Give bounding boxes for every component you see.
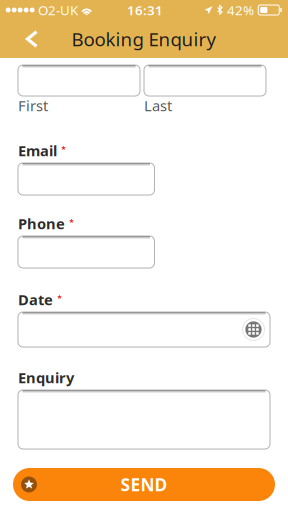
staticText: SEND: [120, 473, 167, 496]
staticText: Date: [18, 290, 53, 309]
staticText: 42%: [227, 1, 254, 19]
button[interactable]: SEND: [13, 468, 275, 501]
staticText: Email: [18, 141, 57, 160]
staticText: Booking Enquiry: [71, 27, 216, 51]
staticText: First: [18, 96, 48, 115]
staticText: O2-UK: [38, 1, 78, 19]
staticText: 16:31: [127, 1, 163, 19]
staticText: Enquiry: [18, 368, 74, 387]
staticText: Phone: [18, 214, 65, 233]
staticText: Last: [144, 96, 172, 115]
button[interactable]: Back: [0, 20, 38, 58]
